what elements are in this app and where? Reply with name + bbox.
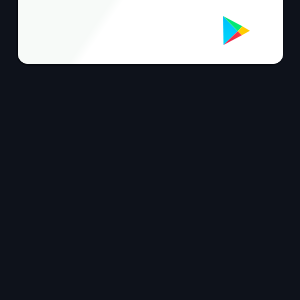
button[interactable]: Google Play <box>18 0 283 64</box>
other: Google Play <box>223 16 250 45</box>
